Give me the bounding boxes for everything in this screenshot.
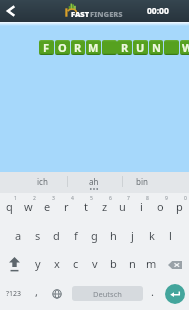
staticText: ah: [89, 176, 99, 187]
button[interactable]: Back: [0, 0, 22, 22]
staticText: c: [73, 256, 79, 271]
button[interactable]: g: [85, 221, 104, 250]
staticText: j: [131, 228, 134, 243]
button[interactable]: ?123: [0, 279, 27, 308]
staticText: a: [15, 228, 22, 243]
staticText: O: [58, 40, 67, 55]
staticText: 0: [184, 195, 187, 202]
staticText: FAST: [71, 9, 90, 19]
staticText: R: [74, 40, 82, 55]
staticText: u: [119, 199, 126, 214]
button[interactable]: .: [144, 279, 161, 308]
staticText: F: [43, 40, 50, 55]
staticText: k: [149, 228, 155, 243]
staticText: 9: [165, 195, 168, 202]
staticText: Deutsch: [93, 289, 122, 299]
staticText: R: [121, 40, 129, 55]
staticText: e: [44, 199, 51, 214]
staticText: bin: [136, 176, 148, 187]
button[interactable]: ah: [72, 172, 116, 193]
button[interactable]: w: [19, 192, 38, 221]
staticText: ,: [35, 284, 38, 299]
staticText: 2: [33, 195, 36, 202]
staticText: ich: [37, 176, 48, 187]
staticText: r: [64, 199, 69, 214]
button[interactable]: ,: [27, 279, 46, 308]
staticText: y: [35, 256, 41, 271]
button[interactable]: M: [86, 40, 101, 55]
button[interactable]: z: [95, 192, 114, 221]
button[interactable]: o: [151, 192, 170, 221]
staticText: 5: [90, 195, 93, 202]
staticText: U: [136, 40, 145, 55]
button[interactable]: [102, 40, 117, 55]
button[interactable]: e: [38, 192, 57, 221]
button[interactable]: h: [104, 221, 123, 250]
button[interactable]: v: [85, 249, 104, 278]
button[interactable]: Shift: [0, 250, 28, 279]
button[interactable]: [164, 40, 179, 55]
button[interactable]: x: [47, 249, 66, 278]
button[interactable]: f: [66, 221, 85, 250]
staticText: 4: [71, 195, 74, 202]
button[interactable]: bin: [120, 172, 164, 193]
staticText: t: [84, 199, 88, 214]
button[interactable]: j: [123, 221, 142, 250]
staticText: b: [110, 256, 117, 271]
staticText: 1: [14, 195, 17, 202]
button[interactable]: t: [76, 192, 95, 221]
staticText: x: [54, 256, 60, 271]
button[interactable]: O: [55, 40, 70, 55]
staticText: m: [146, 256, 157, 271]
staticText: f: [74, 228, 78, 243]
button[interactable]: Change keyboard language: [47, 279, 66, 308]
staticText: v: [92, 256, 98, 271]
button[interactable]: q: [0, 192, 19, 221]
button[interactable]: r: [57, 192, 76, 221]
staticText: z: [102, 199, 108, 214]
button[interactable]: s: [28, 221, 47, 250]
staticText: q: [6, 199, 13, 214]
staticText: n: [129, 256, 136, 271]
button[interactable]: W: [180, 40, 189, 55]
button[interactable]: F: [39, 40, 54, 55]
staticText: h: [110, 228, 117, 243]
staticText: M: [88, 40, 99, 55]
staticText: w: [24, 199, 33, 214]
button[interactable]: u: [113, 192, 132, 221]
button[interactable]: Enter: [161, 279, 189, 308]
button[interactable]: R: [117, 40, 132, 55]
staticText: ?123: [6, 289, 22, 299]
staticText: FINGERS: [90, 9, 123, 19]
staticText: o: [157, 199, 164, 214]
staticText: 6: [109, 195, 112, 202]
button[interactable]: m: [142, 249, 161, 278]
staticText: l: [169, 228, 172, 243]
staticText: p: [176, 199, 183, 214]
button[interactable]: U: [133, 40, 148, 55]
button[interactable]: k: [142, 221, 161, 250]
button[interactable]: Backspace: [161, 250, 189, 279]
staticText: g: [91, 228, 98, 243]
staticText: .: [151, 284, 154, 299]
button[interactable]: a: [9, 221, 28, 250]
staticText: d: [53, 228, 60, 243]
button[interactable]: N: [149, 40, 163, 55]
staticText: s: [35, 228, 41, 243]
button[interactable]: c: [66, 249, 85, 278]
button[interactable]: y: [28, 249, 47, 278]
button[interactable]: l: [161, 221, 180, 250]
staticText: W: [182, 40, 189, 55]
staticText: i: [140, 199, 143, 214]
button[interactable]: d: [47, 221, 66, 250]
button[interactable]: Deutsch: [66, 279, 148, 308]
button[interactable]: p: [170, 192, 189, 221]
staticText: 00:00: [147, 5, 169, 17]
button[interactable]: b: [104, 249, 123, 278]
staticText: N: [152, 40, 161, 55]
button[interactable]: R: [71, 40, 85, 55]
button[interactable]: i: [132, 192, 151, 221]
button[interactable]: ich: [20, 172, 64, 193]
button[interactable]: n: [123, 249, 142, 278]
staticText: 3: [52, 195, 55, 202]
